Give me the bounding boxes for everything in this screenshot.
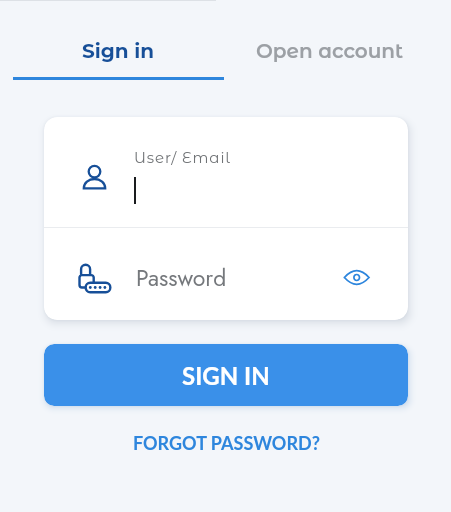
- button[interactable]: SIGN IN: [44, 344, 408, 406]
- button[interactable]: [342, 268, 372, 288]
- button[interactable]: User/ Email: [44, 117, 408, 227]
- button[interactable]: FORGOT PASSWORD?: [26, 423, 426, 463]
- staticText: Open account: [256, 39, 404, 63]
- staticText: FORGOT PASSWORD?: [133, 432, 320, 454]
- staticText: SIGN IN: [182, 361, 270, 390]
- button[interactable]: Open account: [230, 31, 430, 71]
- staticText: User/ Email: [134, 148, 231, 166]
- button[interactable]: Password: [44, 228, 408, 320]
- staticText: Sign in: [82, 39, 155, 63]
- staticText: Password: [136, 261, 227, 294]
- button[interactable]: Sign in: [13, 31, 224, 71]
